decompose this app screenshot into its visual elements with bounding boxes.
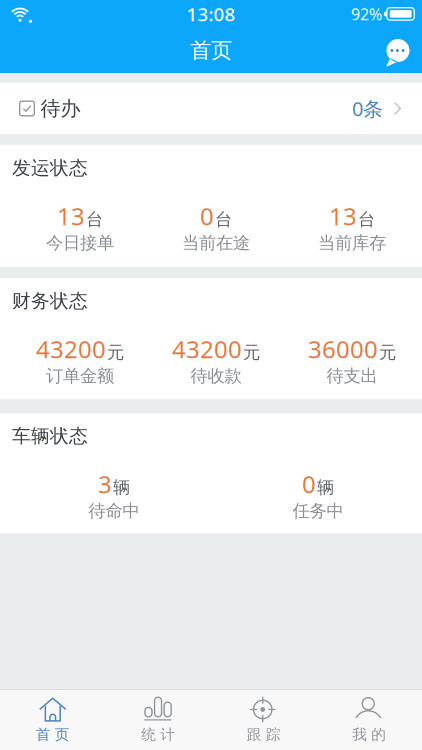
staticText: 36000 [308,333,378,365]
staticText: 我 的 [352,725,386,743]
staticText: 元 [243,342,260,363]
button[interactable]: 统 计 [105,690,211,750]
staticText: 43200 [172,333,242,365]
staticText: 0 [302,468,316,500]
staticText: 台 [358,209,375,230]
staticText: 13 [57,200,85,232]
staticText: 任务中 [292,500,343,522]
staticText: 92% [351,3,382,25]
button[interactable]: 跟 踪 [211,690,316,750]
staticText: 13 [329,200,357,232]
button[interactable]: 消息 [384,35,411,66]
staticText: 13:08 [186,2,235,26]
staticText: 统 计 [141,725,175,743]
staticText: 跟 踪 [247,725,281,743]
staticText: 首 页 [36,725,70,743]
staticText: 当前库存 [318,232,386,254]
button[interactable]: 我 的 [316,690,422,750]
staticText: 今日接单 [46,232,114,254]
staticText: 0 [200,200,214,232]
staticText: 43200 [36,333,106,365]
staticText: 元 [379,342,396,363]
staticText: 当前在途 [182,232,250,254]
staticText: 车辆状态 [12,424,88,447]
staticText: 待办 [40,96,80,121]
staticText: 辆 [317,477,334,498]
staticText: 首页 [190,37,232,64]
button[interactable]: 待办 [0,83,422,134]
staticText: 待命中 [88,500,139,522]
staticText: 待收款 [190,365,241,387]
staticText: 台 [86,209,103,230]
staticText: 财务状态 [12,289,88,312]
staticText: 待支出 [326,365,377,387]
staticText: 台 [215,209,232,230]
staticText: 订单金额 [46,365,114,387]
staticText: 0条 [352,95,383,122]
staticText: 发运状态 [12,156,88,179]
button[interactable]: 首 页 [0,690,105,750]
staticText: 3 [98,468,112,500]
staticText: 辆 [113,477,130,498]
staticText: 元 [107,342,124,363]
